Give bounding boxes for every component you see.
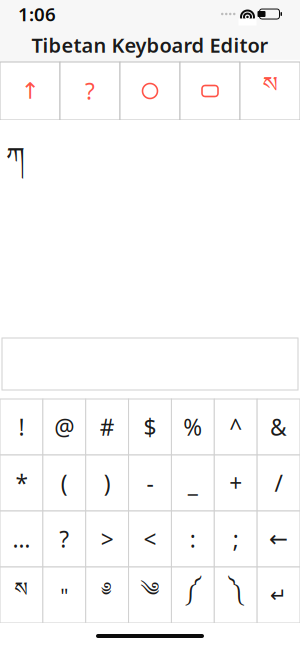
staticText: ༅ — [103, 568, 112, 622]
staticText: - — [146, 468, 153, 498]
button[interactable]: ← — [257, 511, 300, 567]
staticText: ? — [85, 76, 95, 106]
button[interactable]: ↵ — [257, 567, 300, 623]
button[interactable]: % — [171, 399, 214, 455]
staticText: ཀ — [6, 128, 25, 201]
button[interactable]: & — [257, 399, 300, 455]
staticText: > — [101, 524, 114, 554]
button[interactable]: : — [171, 511, 214, 567]
button[interactable]: - — [129, 455, 171, 511]
button[interactable]: $ — [129, 399, 171, 455]
staticText: ༽ — [229, 568, 243, 622]
button[interactable]: ( — [43, 455, 86, 511]
staticText: … — [12, 524, 30, 554]
button[interactable]: # — [86, 399, 129, 455]
staticText: _ — [188, 468, 198, 498]
button[interactable]: ༽ — [214, 567, 257, 623]
button[interactable]: ? — [43, 511, 86, 567]
staticText: # — [100, 412, 115, 442]
button[interactable]: O — [120, 62, 180, 120]
staticText: Tibetan Keyboard Editor — [31, 32, 268, 58]
button[interactable]: / — [257, 455, 300, 511]
button[interactable]: Rounded — [180, 62, 240, 120]
staticText: ? — [59, 524, 69, 554]
button[interactable]: ས — [240, 62, 300, 120]
staticText: & — [270, 412, 287, 442]
button[interactable]: + — [214, 455, 257, 511]
button[interactable]: * — [0, 455, 43, 511]
staticText: ↑ — [20, 78, 39, 104]
staticText: ← — [269, 526, 288, 552]
button[interactable]: … — [0, 511, 43, 567]
staticText: ༄ — [140, 568, 159, 622]
staticText: 1:06 — [18, 2, 56, 26]
staticText: " — [60, 582, 68, 608]
staticText: ; — [233, 524, 239, 554]
button[interactable]: ༅ — [86, 567, 129, 623]
button[interactable]: ས — [0, 567, 43, 623]
staticText: ས — [262, 60, 277, 122]
button[interactable]: " — [43, 567, 86, 623]
staticText: / — [275, 468, 283, 498]
button[interactable]: < — [129, 511, 171, 567]
button[interactable]: _ — [171, 455, 214, 511]
staticText: ↵ — [270, 584, 287, 606]
staticText: ས — [14, 568, 28, 622]
staticText: + — [229, 468, 242, 498]
staticText: ( — [61, 468, 68, 498]
staticText: < — [143, 524, 156, 554]
button[interactable]: @ — [43, 399, 86, 455]
staticText: % — [183, 412, 202, 442]
button[interactable]: ↑ — [0, 62, 60, 120]
button[interactable]: ; — [214, 511, 257, 567]
staticText: ^ — [229, 412, 242, 442]
button[interactable]: ༄ — [129, 567, 171, 623]
staticText: : — [190, 524, 196, 554]
staticText: * — [15, 468, 27, 498]
button[interactable]: ? — [60, 62, 120, 120]
button[interactable]: > — [86, 511, 129, 567]
staticText: $ — [143, 412, 156, 442]
button[interactable]: ) — [86, 455, 129, 511]
staticText: ༼ — [185, 568, 201, 622]
button[interactable]: ^ — [214, 399, 257, 455]
staticText: @ — [54, 412, 74, 442]
button[interactable]: ! — [0, 399, 43, 455]
staticText: ! — [18, 412, 24, 442]
button[interactable]: ༼ — [171, 567, 214, 623]
staticText: ) — [104, 468, 111, 498]
